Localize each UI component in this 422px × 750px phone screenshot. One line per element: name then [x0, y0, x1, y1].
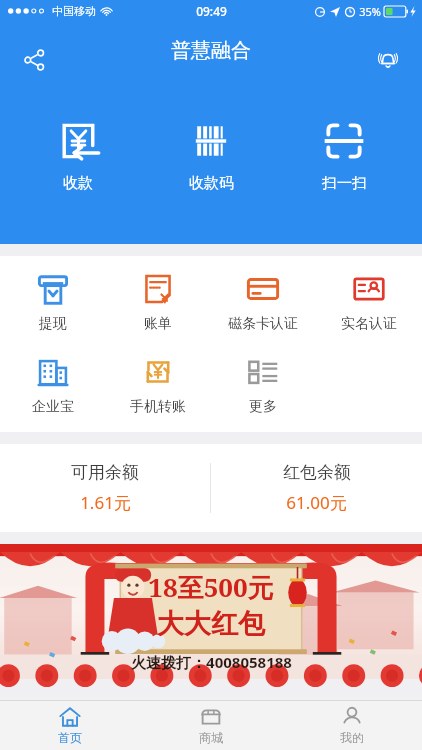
staticText: 扫一扫	[322, 174, 367, 193]
staticText: 收款	[63, 174, 93, 193]
button[interactable]: 红包余额	[211, 444, 422, 532]
staticText: 35%	[359, 4, 381, 19]
button[interactable]: Share	[14, 40, 54, 80]
staticText: 18至500元	[148, 569, 274, 605]
staticText: 大大红包	[157, 607, 265, 641]
staticText: 实名认证	[341, 315, 397, 333]
staticText: 09:49	[196, 3, 227, 19]
staticText: 手机转账	[130, 398, 186, 416]
staticText: 1.61元	[80, 491, 131, 514]
staticText: 更多	[249, 398, 277, 416]
staticText: 我的	[340, 730, 364, 745]
staticText: 商城	[199, 730, 223, 745]
button[interactable]: 扫一扫	[289, 118, 399, 193]
button[interactable]: 更多	[210, 353, 316, 418]
staticText: 收款码	[189, 174, 234, 193]
button[interactable]: 账单	[105, 270, 210, 335]
staticText: 磁条卡认证	[228, 315, 298, 333]
button[interactable]: 企业宝	[0, 353, 105, 418]
button[interactable]: Notifications	[368, 40, 408, 80]
staticText: 红包余额	[283, 462, 351, 483]
staticText: 普慧融合	[171, 38, 251, 63]
button[interactable]: 我的	[281, 701, 422, 750]
staticText: 火速拨打：4008058188	[131, 652, 292, 672]
staticText: 可用余额	[71, 462, 139, 483]
staticText: 中国移动	[52, 4, 96, 18]
staticText: 账单	[144, 315, 172, 333]
button[interactable]: 手机转账	[105, 353, 210, 418]
staticText: 企业宝	[32, 398, 74, 416]
staticText: 提现	[39, 315, 67, 333]
button[interactable]: 可用余额	[0, 444, 210, 532]
button[interactable]: 实名认证	[316, 270, 422, 335]
staticText: 61.00元	[286, 491, 347, 514]
button[interactable]: 收款	[23, 118, 133, 193]
button[interactable]: 18至500元	[0, 544, 422, 679]
button[interactable]: 磁条卡认证	[210, 270, 316, 335]
button[interactable]: 商城	[140, 701, 281, 750]
button[interactable]: 提现	[0, 270, 105, 335]
staticText: 首页	[58, 730, 82, 745]
button[interactable]: 收款码	[156, 118, 266, 193]
button[interactable]: 首页	[0, 701, 140, 750]
